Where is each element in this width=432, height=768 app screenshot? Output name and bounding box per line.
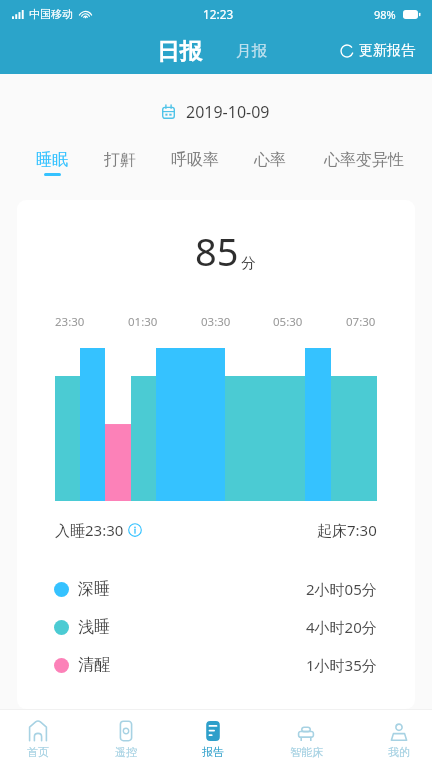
staticText: 浅睡 xyxy=(78,617,110,637)
staticText: 分 xyxy=(241,254,256,272)
staticText: 日报 xyxy=(157,37,202,65)
staticText: 首页 xyxy=(27,745,49,759)
staticText: 更新报告 xyxy=(359,42,415,60)
button[interactable]: 日报 xyxy=(145,30,214,72)
staticText: 清醒 xyxy=(78,655,110,675)
staticText: 07:30 xyxy=(346,314,376,330)
button[interactable]: 心率变异性 xyxy=(316,145,412,190)
staticText: 85 xyxy=(195,225,239,277)
staticText: 98% xyxy=(374,7,396,22)
staticText: 2019-10-09 xyxy=(186,101,270,123)
staticText: 打鼾 xyxy=(104,150,136,170)
button[interactable]: 我的 xyxy=(369,719,429,759)
button[interactable]: 浅睡 xyxy=(54,617,377,637)
button[interactable]: 首页 xyxy=(8,719,68,759)
staticText: 呼吸率 xyxy=(171,150,219,170)
staticText: 1小时35分 xyxy=(306,655,377,675)
button[interactable]: 遥控 xyxy=(96,719,156,759)
staticText: 入睡23:30 xyxy=(55,520,124,540)
button[interactable]: 更新报告 xyxy=(330,36,432,66)
staticText: 心率变异性 xyxy=(324,150,404,170)
button[interactable]: 呼吸率 xyxy=(163,145,227,190)
staticText: 我的 xyxy=(388,745,410,759)
staticText: 智能床 xyxy=(290,745,323,759)
button[interactable]: 报告 xyxy=(183,719,243,759)
button[interactable]: 打鼾 xyxy=(96,145,144,190)
staticText: 23:30 xyxy=(55,314,85,330)
button[interactable]: 清醒 xyxy=(54,655,377,675)
staticText: 报告 xyxy=(202,745,224,759)
staticText: 2小时05分 xyxy=(306,579,377,599)
button[interactable]: 月报 xyxy=(228,34,275,68)
button[interactable]: 睡眠 xyxy=(28,145,76,190)
button[interactable]: 心率 xyxy=(246,145,294,190)
button[interactable]: 深睡 xyxy=(54,579,377,599)
staticText: 遥控 xyxy=(115,745,137,759)
staticText: 03:30 xyxy=(201,314,231,330)
staticText: 月报 xyxy=(236,41,267,61)
staticText: 心率 xyxy=(254,150,286,170)
staticText: 中国移动 xyxy=(29,7,73,21)
staticText: 12:23 xyxy=(203,6,234,22)
staticText: 起床7:30 xyxy=(317,520,377,540)
staticText: 睡眠 xyxy=(36,150,68,170)
staticText: 01:30 xyxy=(128,314,158,330)
staticText: 05:30 xyxy=(273,314,303,330)
staticText: 深睡 xyxy=(78,579,110,599)
button[interactable]: 2019-10-09 xyxy=(156,97,276,127)
button[interactable]: 智能床 xyxy=(276,719,336,759)
staticText: 4小时20分 xyxy=(306,617,377,637)
